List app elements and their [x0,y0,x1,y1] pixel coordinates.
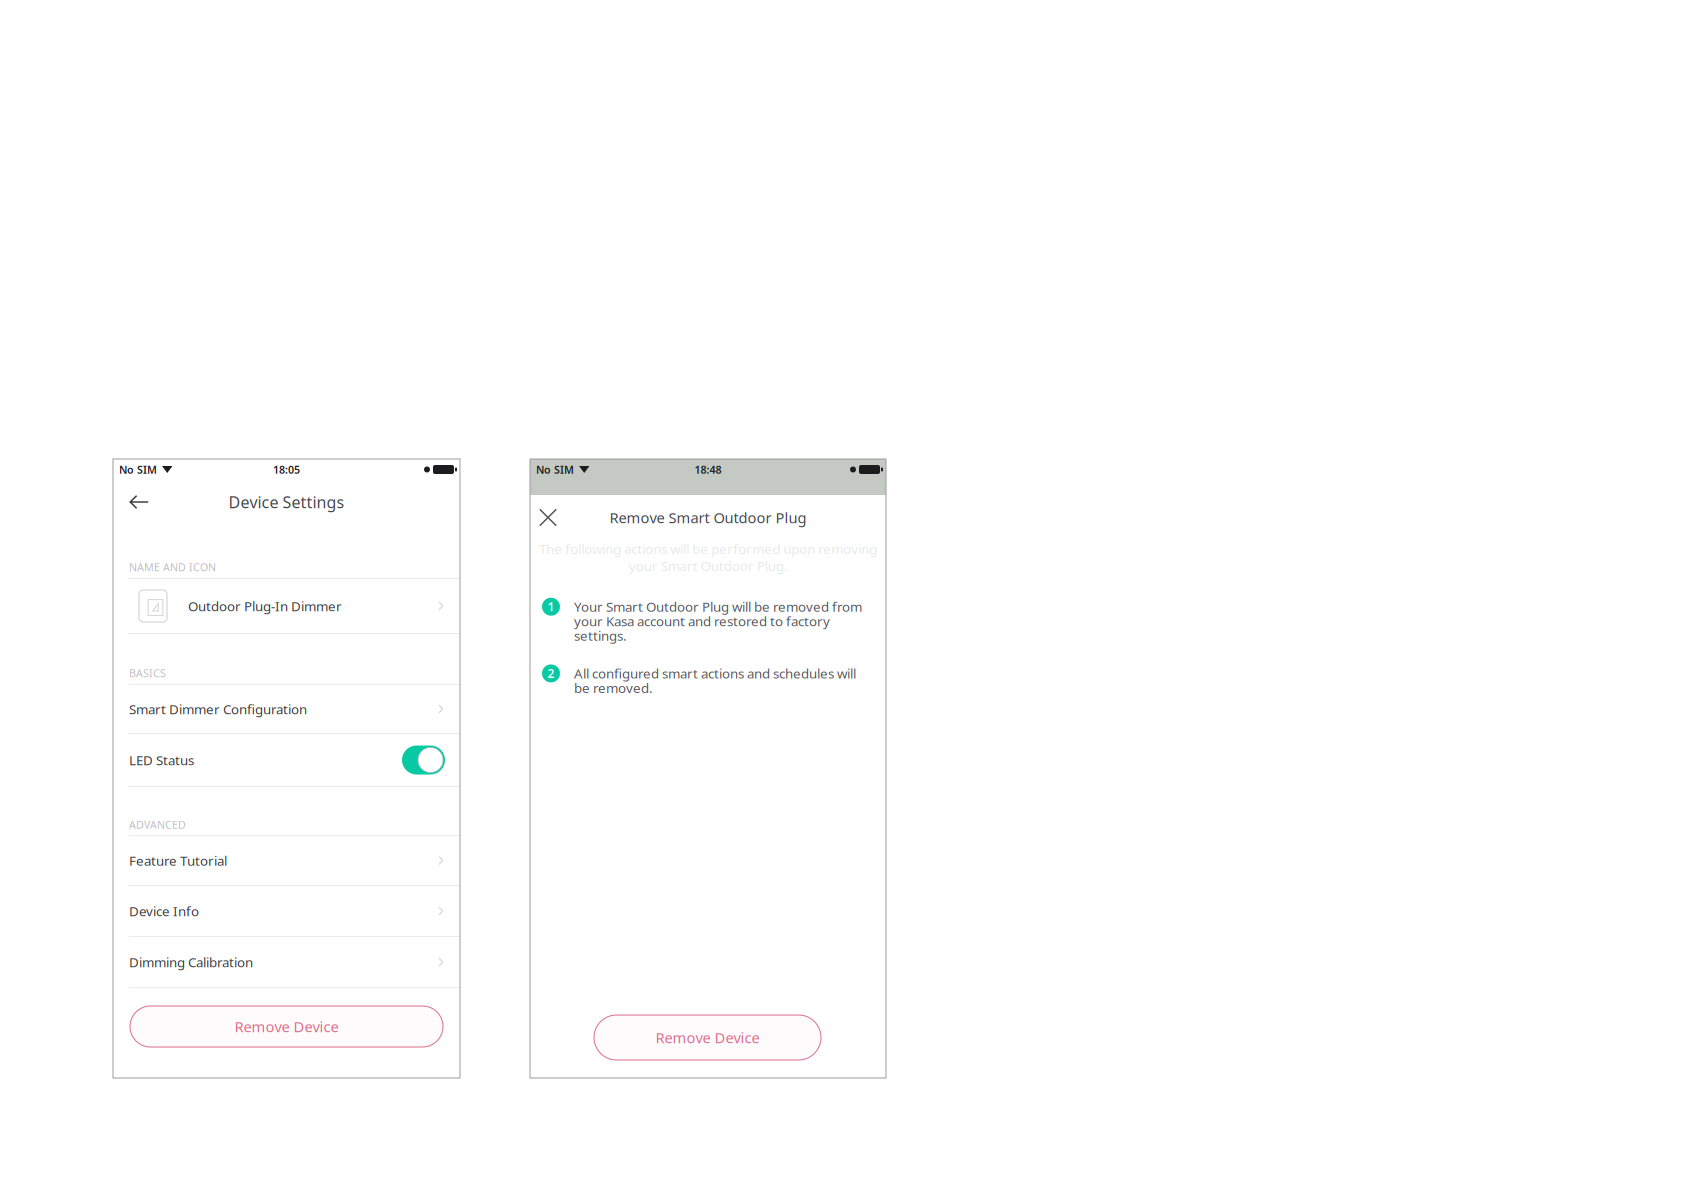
staticText: No SIM [119,462,157,477]
staticText: Device Info [129,902,199,920]
staticText: Remove Smart Outdoor Plug [609,508,806,527]
staticText: All configured smart actions and schedul… [574,664,856,697]
button[interactable]: Back [122,488,156,516]
staticText: 18:48 [694,462,721,477]
button[interactable]: Remove Device [130,1006,443,1047]
staticText: ADVANCED [129,817,186,832]
button[interactable]: Remove Device [594,1015,821,1060]
staticText: BASICS [129,666,166,680]
staticText: Smart Dimmer Configuration [129,700,307,718]
button[interactable]: Feature Tutorial [113,836,460,885]
staticText: 18:05 [273,462,300,477]
staticText: Dimming Calibration [129,953,253,971]
button[interactable]: Device Info [113,886,460,936]
staticText: Your Smart Outdoor Plug will be removed … [574,598,862,644]
staticText: The following actions will be performed … [539,540,877,575]
button[interactable]: Smart Dimmer Configuration [113,685,460,733]
staticText: 1 [547,599,554,615]
staticText: Outdoor Plug-In Dimmer [188,597,342,615]
button[interactable]: Dimming Calibration [113,937,460,987]
staticText: Device Settings [228,491,344,513]
staticText: NAME AND ICON [129,560,216,574]
staticText: Feature Tutorial [129,852,227,869]
staticText: Remove Device [655,1028,759,1047]
button[interactable]: Outdoor Plug-In Dimmer [113,579,460,633]
staticText: No SIM [536,462,574,477]
staticText: Remove Device [234,1017,338,1036]
staticText: LED Status [129,751,194,769]
button[interactable]: Close [531,500,565,534]
staticText: 2 [547,665,554,681]
button[interactable]: LED Status [113,734,460,786]
